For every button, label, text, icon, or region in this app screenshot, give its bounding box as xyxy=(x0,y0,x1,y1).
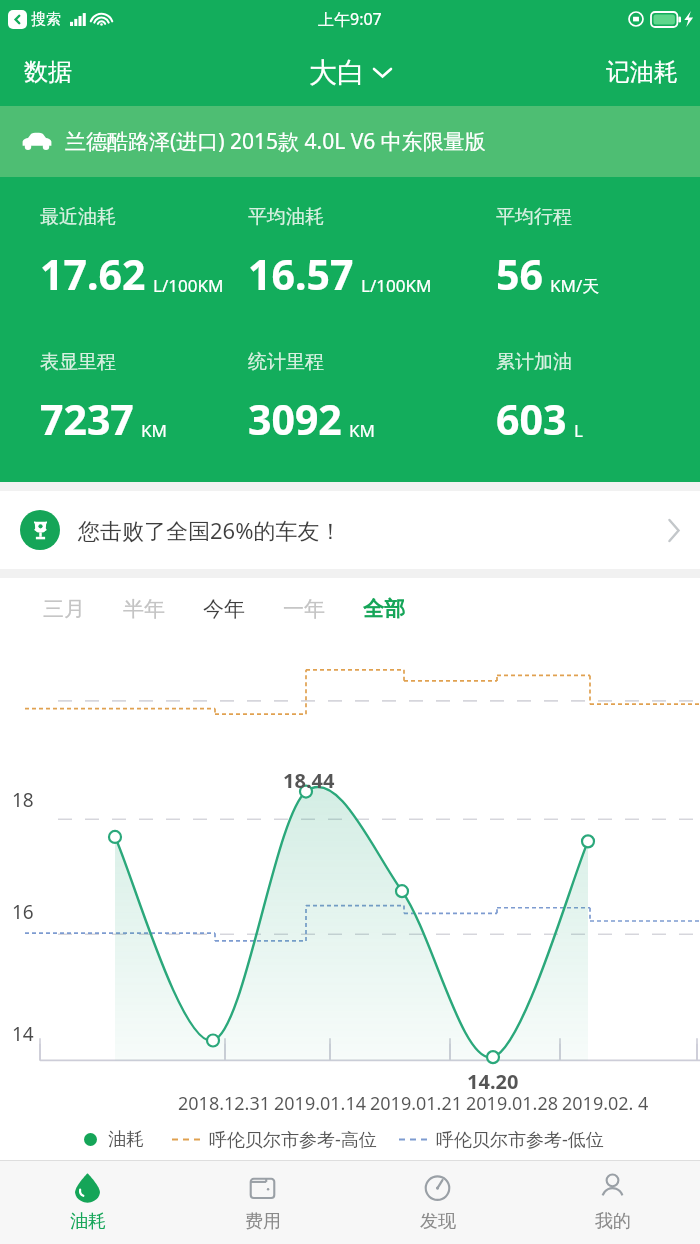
staticText: 表显里程 xyxy=(40,350,116,374)
staticText: 今年 xyxy=(203,596,245,622)
staticText: 累计加油 xyxy=(496,350,572,374)
staticText: 您击败了全国26%的车友！ xyxy=(78,515,342,545)
staticText: 16 xyxy=(12,899,34,925)
staticText: 全部 xyxy=(363,596,405,622)
staticText: 14 xyxy=(12,1021,34,1047)
staticText: 一年 xyxy=(283,596,325,622)
staticText: 14.20 xyxy=(467,1068,519,1095)
staticText: 7237 xyxy=(40,391,134,447)
staticText: 三月 xyxy=(43,596,85,622)
staticText: 603 xyxy=(496,391,567,447)
staticText: 2019.01.28 xyxy=(466,1091,559,1116)
staticText: 3092 xyxy=(248,391,342,447)
staticText: 呼伦贝尔市参考-低位 xyxy=(436,1127,604,1152)
button[interactable]: 今年 xyxy=(184,586,264,632)
button[interactable]: 发现 xyxy=(350,1161,525,1244)
staticText: L/100KM xyxy=(361,274,432,297)
staticText: 费用 xyxy=(245,1210,281,1233)
other: 查看详情 xyxy=(668,520,680,541)
staticText: 半年 xyxy=(123,596,165,622)
button[interactable]: 数据 xyxy=(0,43,96,101)
staticText: 搜索 xyxy=(31,10,61,29)
staticText: 18 xyxy=(12,787,34,813)
staticText: 18.44 xyxy=(283,767,335,794)
staticText: 发现 xyxy=(420,1210,456,1233)
staticText: L xyxy=(574,419,583,442)
staticText: 呼伦贝尔市参考-高位 xyxy=(209,1127,377,1152)
staticText: 16.57 xyxy=(248,246,354,302)
staticText: 平均行程 xyxy=(496,205,572,229)
staticText: 兰德酷路泽(进口) 2015款 4.0L V6 中东限量版 xyxy=(65,127,486,156)
button[interactable]: 一年 xyxy=(264,586,344,632)
button[interactable]: 三月 xyxy=(24,586,104,632)
staticText: 我的 xyxy=(595,1210,631,1233)
button[interactable]: 油耗 xyxy=(0,1161,175,1244)
staticText: 油耗 xyxy=(70,1210,106,1233)
button[interactable]: 记油耗 xyxy=(584,43,700,101)
staticText: 大白 xyxy=(309,55,365,90)
button[interactable]: 兰德酷路泽(进口) 2015款 4.0L V6 中东限量版 xyxy=(0,106,700,177)
staticText: KM xyxy=(349,419,375,442)
button[interactable]: 半年 xyxy=(104,586,184,632)
staticText: 56 xyxy=(496,246,543,302)
staticText: 2019.02. 4 xyxy=(562,1091,649,1116)
staticText: KM xyxy=(141,419,167,442)
staticText: 上午9:07 xyxy=(318,8,382,30)
staticText: 记油耗 xyxy=(606,57,678,87)
staticText: 最近油耗 xyxy=(40,205,116,229)
staticText: 2019.01.14 xyxy=(274,1091,367,1116)
button[interactable]: 费用 xyxy=(175,1161,350,1244)
button[interactable]: 我的 xyxy=(525,1161,700,1244)
button[interactable]: 您击败了全国26%的车友！ xyxy=(0,491,700,569)
staticText: 2019.01.21 xyxy=(370,1091,463,1116)
staticText: 2018.12.31 xyxy=(178,1091,271,1116)
staticText: KM/天 xyxy=(550,274,600,297)
staticText: 数据 xyxy=(24,57,72,87)
staticText: 油耗 xyxy=(108,1128,144,1151)
staticText: 17.62 xyxy=(40,246,146,302)
staticText: L/100KM xyxy=(153,274,224,297)
staticText: 统计里程 xyxy=(248,350,324,374)
button[interactable]: 全部 xyxy=(344,586,424,632)
staticText: 平均油耗 xyxy=(248,205,324,229)
button[interactable]: 大白 xyxy=(295,47,405,98)
